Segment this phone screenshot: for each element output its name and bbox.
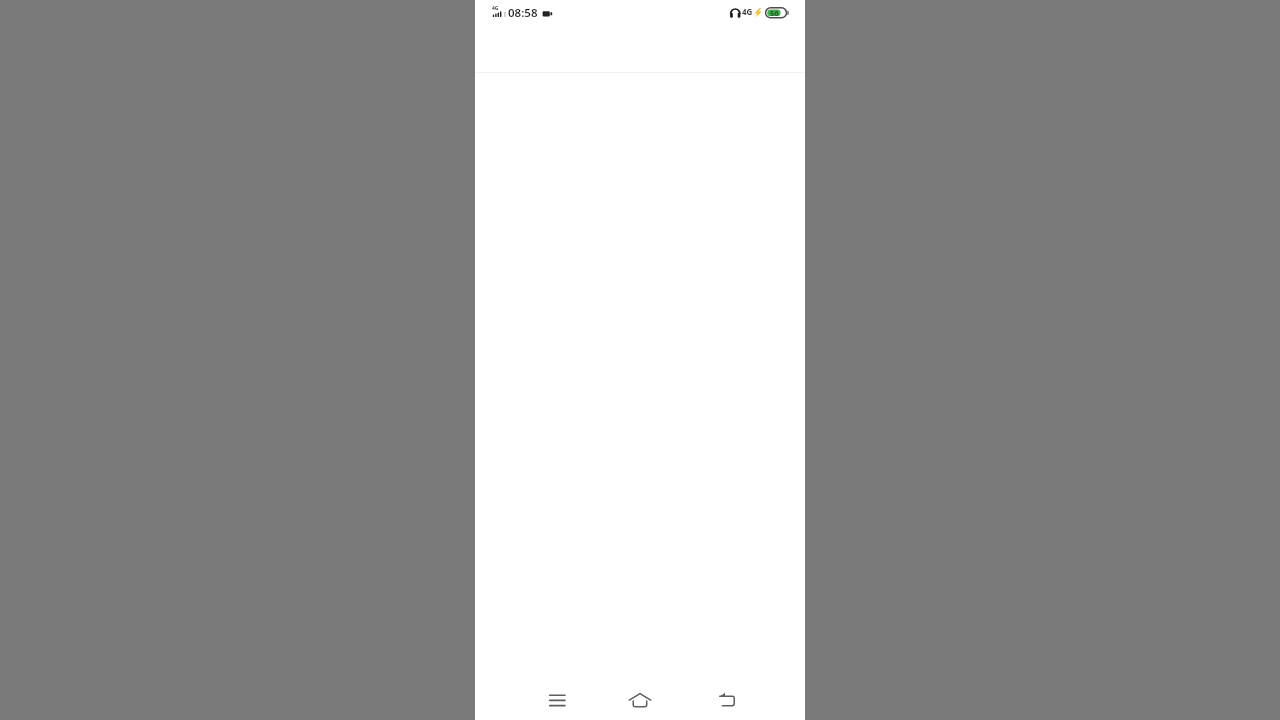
staticText: 56 — [770, 8, 779, 18]
staticText: 4G — [742, 6, 753, 17]
button[interactable] — [537, 680, 577, 720]
button[interactable] — [707, 680, 747, 720]
staticText: 08:58 — [508, 5, 538, 21]
staticText: 4G — [492, 5, 499, 12]
button[interactable] — [620, 680, 660, 720]
